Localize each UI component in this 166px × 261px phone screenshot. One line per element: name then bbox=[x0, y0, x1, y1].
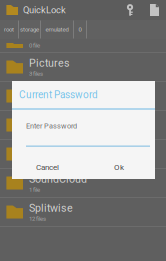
staticText: Ringtones bbox=[29, 86, 78, 98]
button[interactable]: 0 bbox=[74, 20, 87, 38]
staticText: SoundCloud bbox=[29, 173, 87, 185]
staticText: Cancel bbox=[36, 163, 59, 172]
staticText: Enter Password bbox=[26, 122, 77, 130]
staticText: emulated bbox=[45, 26, 68, 33]
button[interactable]: Notes bbox=[143, 4, 166, 16]
button[interactable]: Ringtones bbox=[0, 82, 166, 111]
staticText: Splitwise bbox=[29, 202, 73, 214]
button[interactable]: root bbox=[0, 20, 19, 38]
staticText: QuickLock bbox=[23, 4, 66, 15]
staticText: root bbox=[4, 26, 14, 33]
staticText: 0 bbox=[78, 26, 81, 33]
staticText: 0 file bbox=[29, 42, 40, 49]
button[interactable]: emulated bbox=[41, 20, 74, 38]
button[interactable]: Password bbox=[117, 4, 143, 16]
button[interactable]: storage bbox=[19, 20, 41, 38]
staticText: Ok bbox=[114, 163, 124, 172]
staticText: 3 files bbox=[29, 70, 43, 77]
staticText: SHAREit bbox=[29, 144, 69, 156]
button[interactable]: Splitwise bbox=[0, 198, 166, 227]
button[interactable]: Screenshot bbox=[0, 111, 166, 140]
staticText: Current Password bbox=[19, 89, 98, 101]
staticText: storage bbox=[20, 26, 39, 33]
button[interactable]: SHAREit bbox=[0, 140, 166, 169]
staticText: 1 file bbox=[29, 186, 40, 193]
button[interactable]: Cancel bbox=[12, 156, 83, 179]
button[interactable]: Ok bbox=[83, 156, 155, 179]
staticText: Screenshot bbox=[29, 115, 84, 127]
staticText: 5 files bbox=[29, 128, 43, 135]
button[interactable]: Pictures bbox=[0, 53, 166, 82]
staticText: Pictures bbox=[29, 57, 70, 69]
staticText: 12 files bbox=[29, 215, 46, 222]
button[interactable]: SoundCloud bbox=[0, 169, 166, 198]
